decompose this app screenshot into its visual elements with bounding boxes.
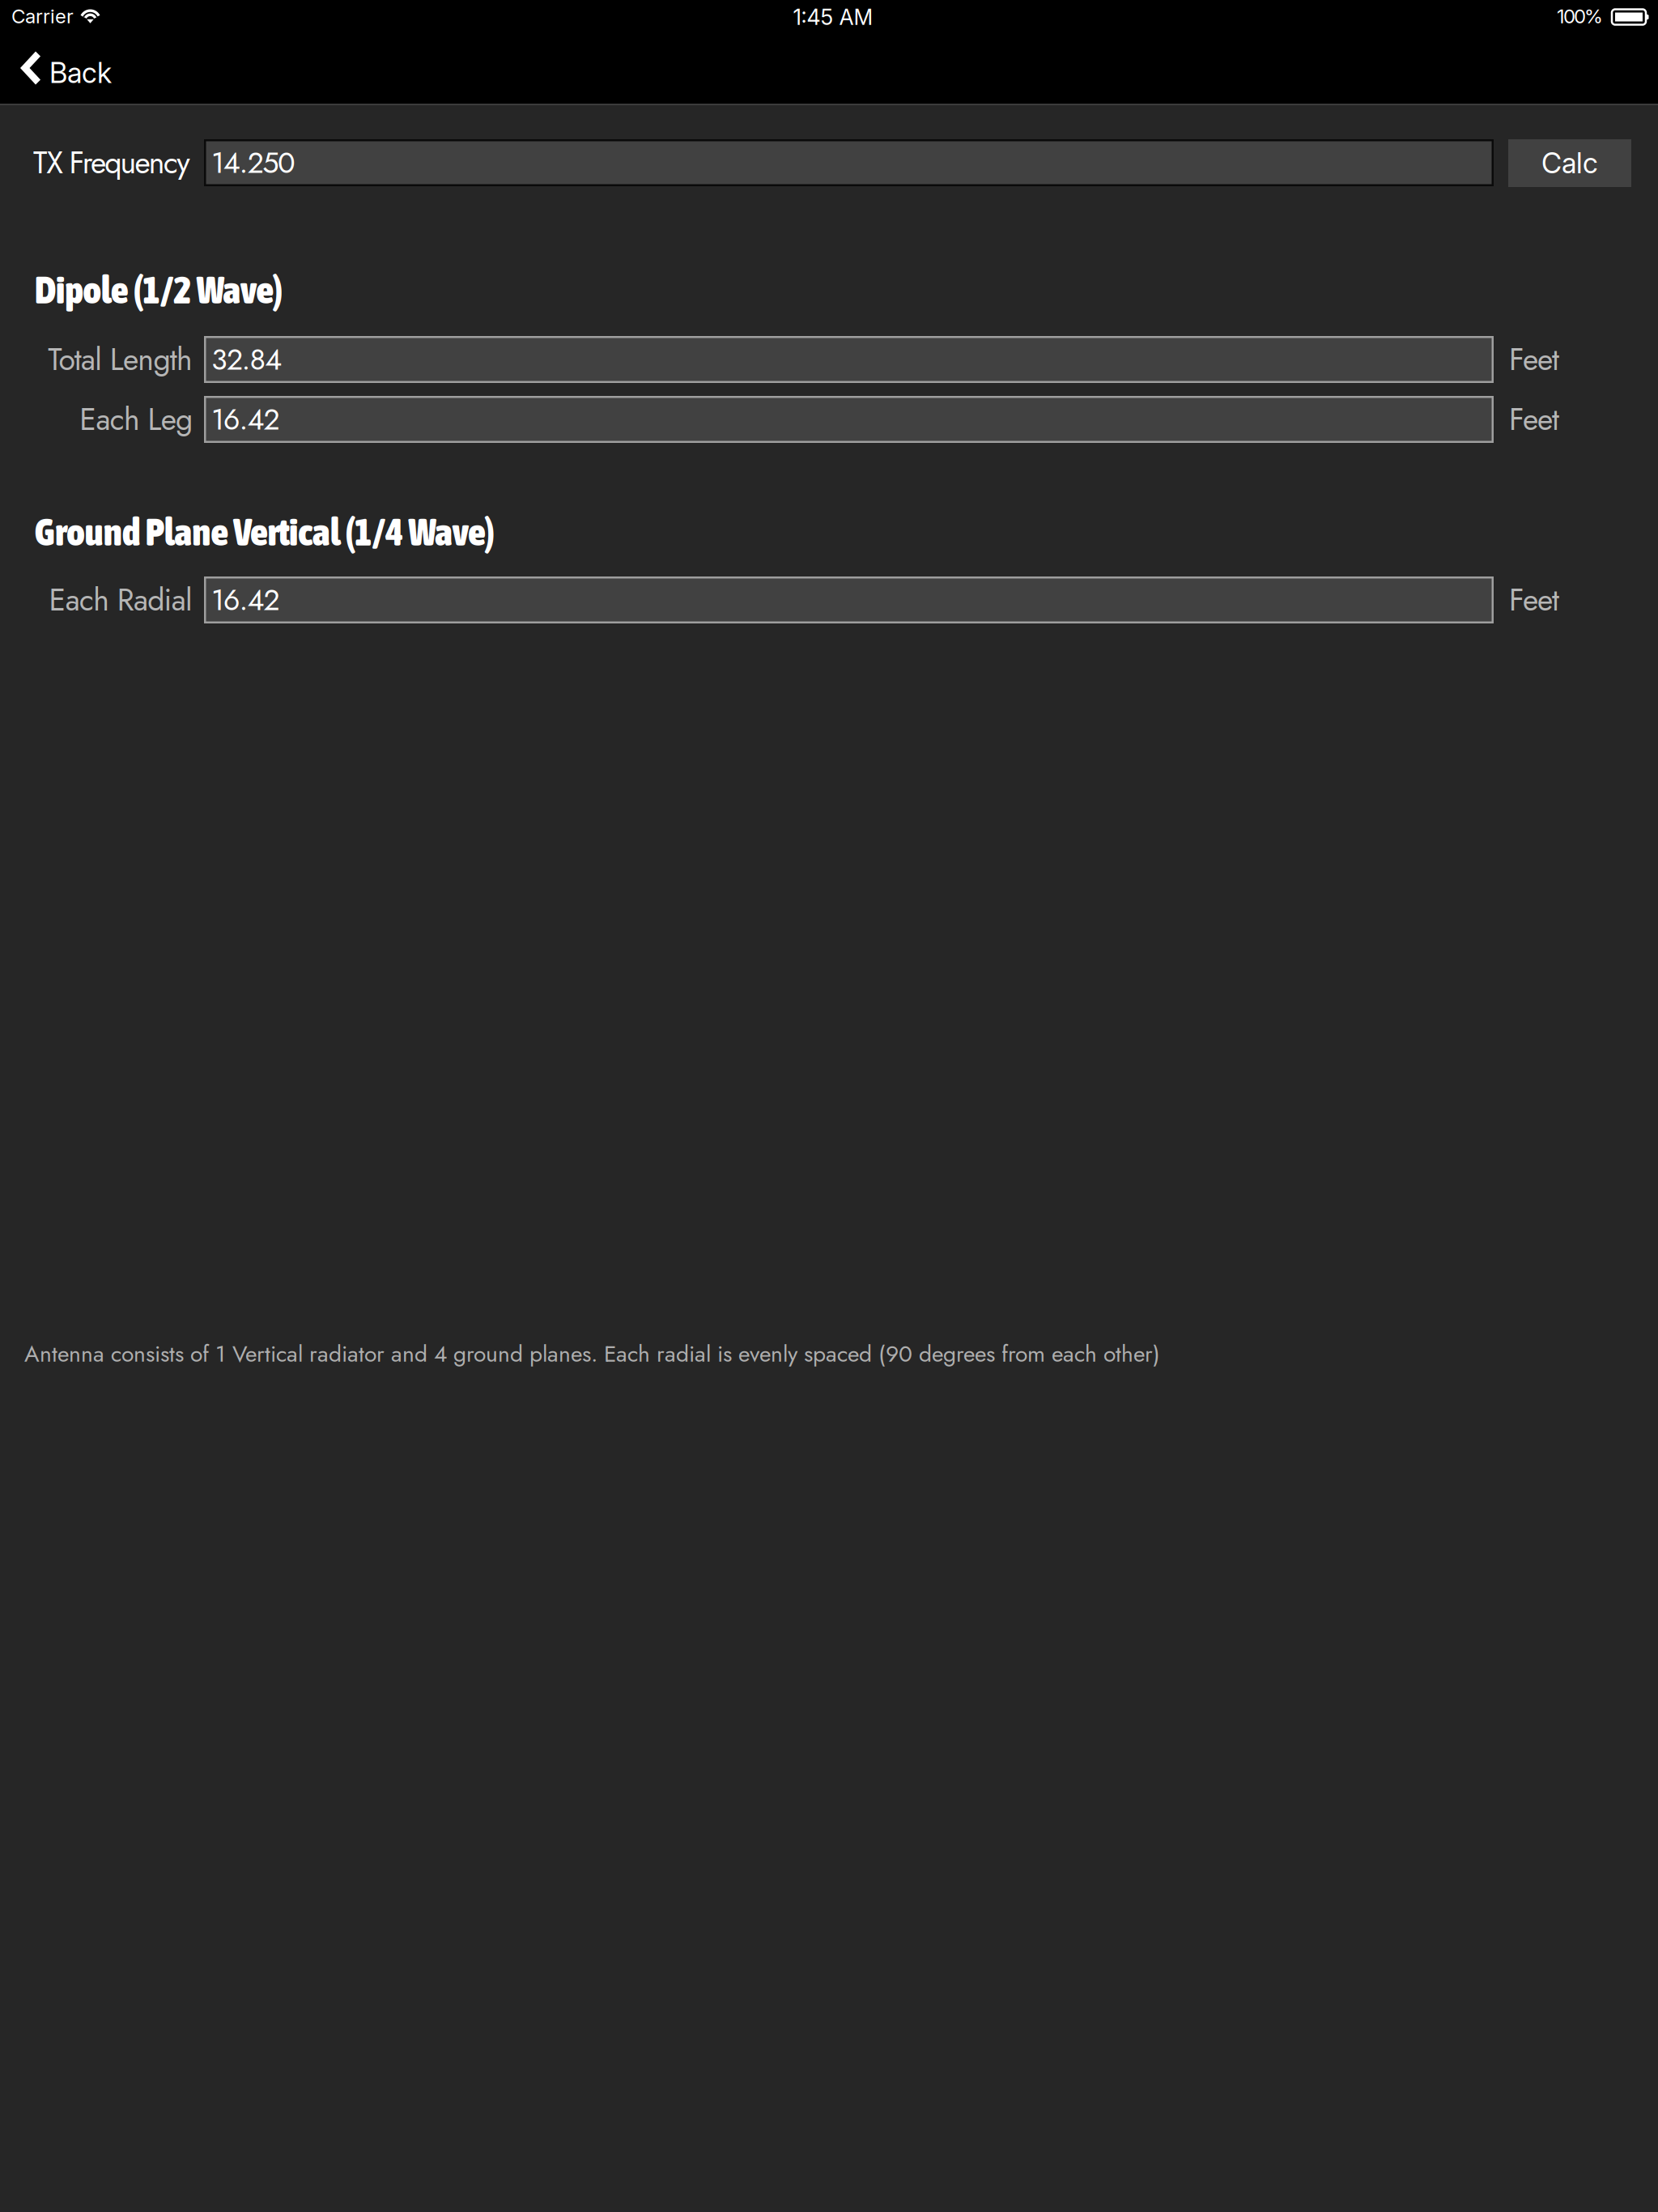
staticText: Feet bbox=[1509, 578, 1559, 622]
staticText: TX Frequency bbox=[33, 141, 190, 185]
staticText: Feet bbox=[1509, 398, 1559, 441]
staticText: Dipole (1/2 Wave) bbox=[35, 268, 282, 312]
staticText: Ground Plane Vertical (1/4 Wave) bbox=[35, 510, 494, 554]
staticText: 100% bbox=[1557, 4, 1603, 28]
staticText: Antenna consists of 1 Vertical radiator … bbox=[24, 1337, 1160, 1370]
staticText: 1:45 AM bbox=[793, 4, 873, 30]
staticText: 16.42 bbox=[211, 579, 279, 621]
staticText: Each Radial bbox=[49, 578, 193, 622]
staticText: Each Leg bbox=[79, 398, 193, 441]
staticText: 14.250 bbox=[211, 142, 295, 184]
button[interactable]: Back bbox=[0, 42, 1658, 104]
staticText: Total Length bbox=[48, 338, 193, 381]
staticText: 32.84 bbox=[211, 338, 282, 381]
button[interactable]: Calc bbox=[1508, 139, 1631, 187]
staticText: Feet bbox=[1509, 338, 1559, 381]
staticText: Calc bbox=[1541, 146, 1598, 180]
staticText: Carrier bbox=[11, 4, 74, 28]
staticText: Back bbox=[49, 56, 112, 90]
staticText: 16.42 bbox=[211, 398, 279, 440]
